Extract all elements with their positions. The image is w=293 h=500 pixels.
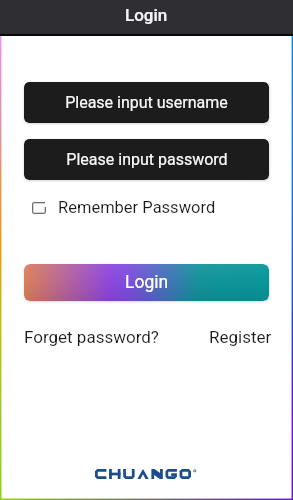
staticText: Login [125,5,168,25]
button[interactable]: Please input password [24,139,269,180]
button[interactable]: Please input username [24,82,269,123]
button[interactable]: Register [209,327,272,347]
staticText: Remember Password [58,198,216,217]
staticText: Please input password [66,150,228,169]
button[interactable]: Remember Password [32,198,216,217]
button[interactable]: Login [24,264,269,301]
button[interactable]: Forget password? [24,327,165,347]
staticText: Please input username [65,93,228,112]
staticText: Login [125,272,169,293]
